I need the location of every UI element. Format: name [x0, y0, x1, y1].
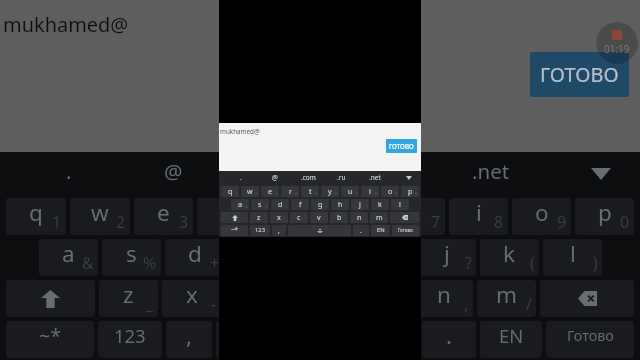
- staticText: e: [157, 198, 170, 228]
- button[interactable]: 123: [98, 321, 162, 358]
- button[interactable]: a: [231, 199, 249, 210]
- button[interactable]: y: [323, 198, 382, 235]
- button[interactable]: l: [543, 239, 602, 276]
- button[interactable]: x: [270, 212, 288, 223]
- button[interactable]: .net: [438, 152, 544, 196]
- staticText: -: [211, 293, 217, 315]
- button[interactable]: .com: [292, 171, 325, 185]
- button[interactable]: p: [575, 198, 634, 235]
- button[interactable]: .net: [358, 171, 391, 185]
- button[interactable]: 123: [250, 225, 270, 236]
- button[interactable]: u: [341, 186, 359, 197]
- button[interactable]: t: [301, 186, 319, 197]
- button[interactable]: e: [261, 186, 279, 197]
- button[interactable]: More suggestions: [544, 152, 640, 196]
- button[interactable]: .: [353, 225, 369, 236]
- button[interactable]: Готово: [546, 321, 634, 358]
- button[interactable]: @: [121, 152, 226, 196]
- button[interactable]: c: [290, 212, 308, 223]
- button[interactable]: ,: [272, 225, 286, 236]
- button[interactable]: @: [258, 171, 292, 185]
- staticText: h: [338, 199, 343, 209]
- button[interactable]: y: [321, 186, 339, 197]
- button[interactable]: w: [70, 198, 130, 235]
- button[interactable]: v: [310, 212, 328, 223]
- button[interactable]: w: [241, 186, 259, 197]
- staticText: s: [126, 239, 137, 269]
- button[interactable]: o: [381, 186, 399, 197]
- button[interactable]: k: [480, 239, 539, 276]
- button[interactable]: Space: [288, 225, 351, 236]
- button[interactable]: j: [417, 239, 476, 276]
- button[interactable]: a: [39, 239, 98, 276]
- button[interactable]: n: [350, 212, 368, 223]
- button[interactable]: r: [197, 198, 256, 235]
- button[interactable]: n: [414, 280, 473, 317]
- button[interactable]: ~*: [221, 225, 248, 236]
- button[interactable]: Готово: [392, 225, 419, 236]
- button[interactable]: EN: [371, 225, 390, 236]
- button[interactable]: e: [134, 198, 193, 235]
- button[interactable]: k: [371, 199, 389, 210]
- staticText: z: [257, 212, 261, 222]
- staticText: ~*: [231, 225, 239, 234]
- button[interactable]: More suggestions: [391, 171, 421, 185]
- button[interactable]: j: [351, 199, 369, 210]
- button[interactable]: r: [281, 186, 299, 197]
- button[interactable]: z: [99, 280, 158, 317]
- staticText: Готово: [398, 227, 413, 233]
- button[interactable]: h: [331, 199, 349, 210]
- button[interactable]: Shift: [6, 280, 95, 317]
- staticText: -: [285, 217, 287, 222]
- button[interactable]: z: [250, 212, 268, 223]
- button[interactable]: .ru: [332, 152, 438, 196]
- button[interactable]: Backspace: [540, 280, 634, 317]
- button[interactable]: .: [224, 171, 258, 185]
- button[interactable]: q: [6, 198, 66, 235]
- staticText: @: [164, 157, 183, 185]
- staticText: q: [228, 186, 233, 196]
- button[interactable]: f: [291, 199, 309, 210]
- button[interactable]: ГОТОВО: [530, 52, 629, 97]
- button[interactable]: .com: [226, 152, 332, 196]
- button[interactable]: l: [391, 199, 409, 210]
- button[interactable]: .ru: [325, 171, 358, 185]
- button[interactable]: g: [311, 199, 329, 210]
- button[interactable]: .: [422, 321, 476, 358]
- button[interactable]: Space: [216, 321, 418, 358]
- button[interactable]: b: [330, 212, 348, 223]
- button[interactable]: u: [386, 198, 445, 235]
- button[interactable]: x: [162, 280, 221, 317]
- button[interactable]: ,: [166, 321, 212, 358]
- button[interactable]: o: [512, 198, 571, 235]
- staticText: ,: [464, 293, 469, 315]
- button[interactable]: p: [401, 186, 419, 197]
- button[interactable]: m: [477, 280, 536, 317]
- button[interactable]: Stop recording: [596, 22, 638, 64]
- button[interactable]: EN: [480, 321, 542, 358]
- button[interactable]: t: [260, 198, 319, 235]
- button[interactable]: Shift: [221, 212, 248, 223]
- button[interactable]: Backspace: [390, 212, 419, 223]
- button[interactable]: s: [251, 199, 269, 210]
- button[interactable]: d: [165, 239, 224, 276]
- button[interactable]: d: [271, 199, 289, 210]
- button[interactable]: ГОТОВО: [386, 139, 417, 153]
- staticText: r: [289, 186, 292, 196]
- button[interactable]: i: [361, 186, 379, 197]
- button[interactable]: ~*: [6, 321, 94, 358]
- staticText: d: [188, 239, 202, 269]
- button[interactable]: m: [370, 212, 388, 223]
- button[interactable]: i: [449, 198, 508, 235]
- button[interactable]: s: [102, 239, 161, 276]
- button[interactable]: q: [221, 186, 239, 197]
